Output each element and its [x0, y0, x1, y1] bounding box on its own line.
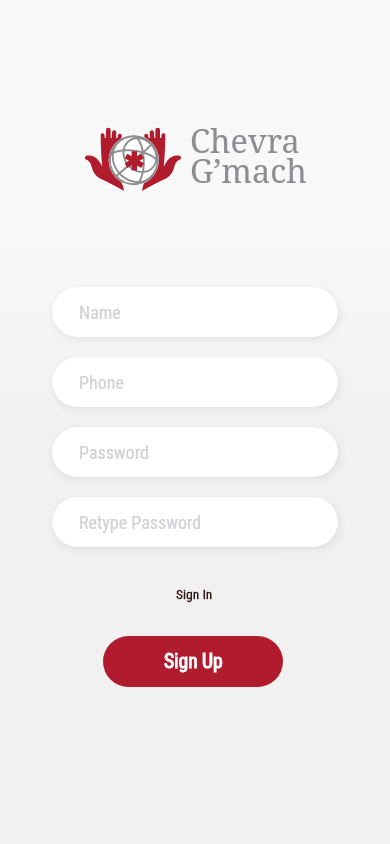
staticText: Retype Password — [79, 512, 202, 533]
button[interactable]: Retype Password — [52, 497, 338, 547]
button[interactable]: Sign In — [166, 584, 222, 604]
staticText: Sign Up — [164, 650, 223, 673]
staticText: Chevra G’mach — [190, 118, 307, 193]
button[interactable]: Password — [52, 427, 338, 477]
other: Chevra G'mach logo — [84, 122, 182, 196]
staticText: Sign In — [176, 586, 213, 602]
button[interactable]: Sign Up — [103, 636, 283, 687]
button[interactable]: Name — [52, 287, 338, 337]
button[interactable]: Phone — [52, 357, 338, 407]
staticText: Password — [79, 442, 149, 463]
staticText: Name — [79, 302, 121, 323]
staticText: Phone — [79, 372, 124, 393]
